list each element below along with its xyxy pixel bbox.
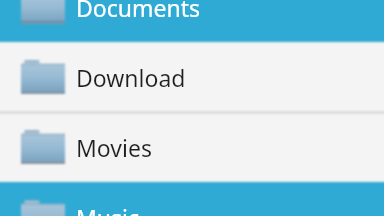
staticText: Download — [76, 62, 186, 93]
button[interactable]: Movies — [0, 112, 384, 182]
button[interactable]: Documents — [0, 0, 384, 42]
button[interactable]: Download — [0, 42, 384, 112]
staticText: Documents — [76, 0, 200, 23]
staticText: Music — [76, 202, 140, 216]
staticText: Movies — [76, 132, 152, 163]
button[interactable]: Music — [0, 182, 384, 216]
